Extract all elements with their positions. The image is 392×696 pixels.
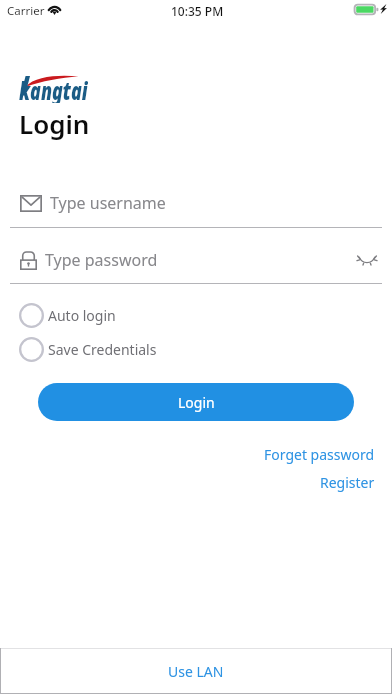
button[interactable]: Login	[38, 383, 354, 421]
staticText: Save Credentials	[48, 340, 157, 359]
button[interactable]: Register	[320, 473, 375, 492]
staticText: 10:35 PM	[171, 3, 224, 19]
button[interactable]: Save Credentials	[0, 335, 392, 363]
button[interactable]: Type password	[0, 239, 392, 281]
button[interactable]: Forget password	[264, 445, 375, 464]
button[interactable]: Show password	[355, 248, 379, 272]
button[interactable]: Use LAN	[0, 648, 392, 694]
staticText: kangtai	[19, 73, 88, 103]
staticText: Type password	[45, 249, 158, 271]
staticText: Login	[19, 106, 90, 141]
staticText: Login	[178, 393, 215, 412]
staticText: Auto login	[48, 306, 116, 325]
staticText: Carrier	[7, 3, 45, 19]
button[interactable]: Auto login	[0, 301, 392, 329]
button[interactable]: Type username	[0, 182, 392, 224]
staticText: Type username	[50, 192, 166, 214]
staticText: Use LAN	[168, 662, 224, 681]
